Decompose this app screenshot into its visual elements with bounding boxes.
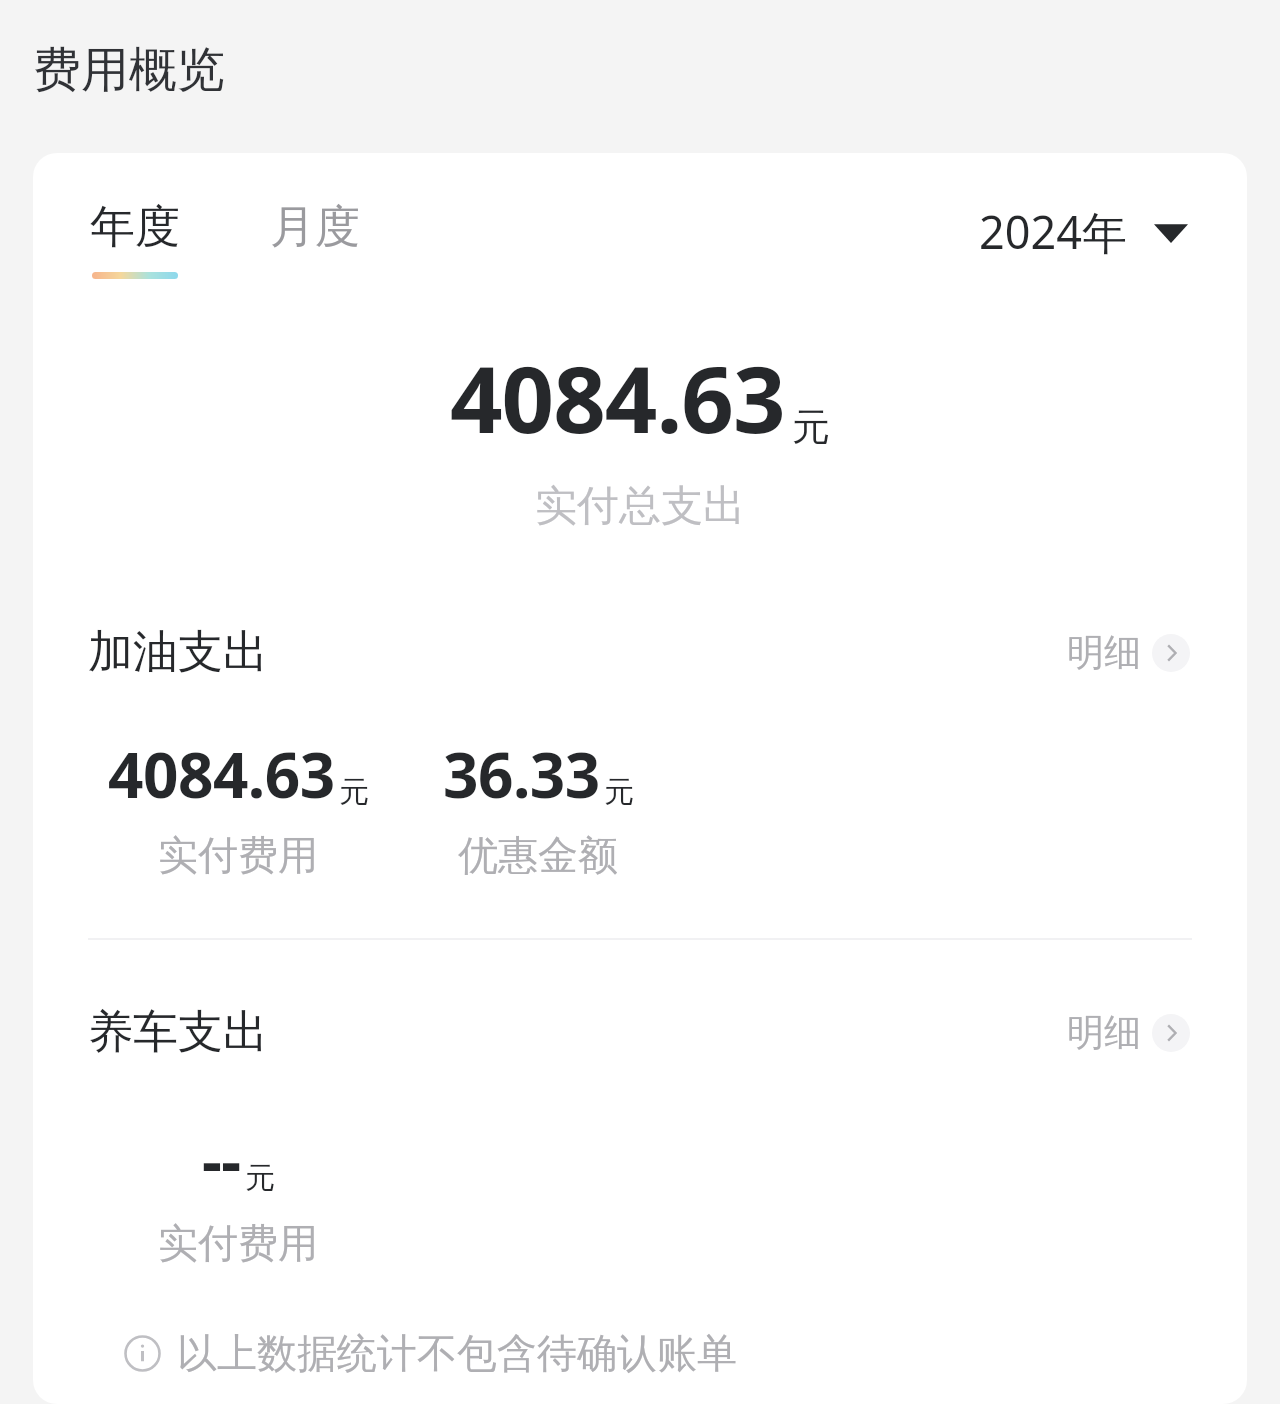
staticText: 元 <box>792 403 830 451</box>
button[interactable]: 明细 Details <box>1065 1003 1192 1062</box>
staticText: 元 <box>245 1159 275 1197</box>
staticText: 年度 <box>90 199 180 256</box>
staticText: 36.33 <box>443 732 600 816</box>
staticText: 以上数据统计不包含待确认账单 <box>177 1328 737 1378</box>
staticText: 费用概览 <box>33 40 225 100</box>
button[interactable]: 2024年 <box>975 199 1192 264</box>
staticText: 实付费用 <box>158 1218 318 1268</box>
staticText: 月度 <box>270 199 360 256</box>
staticText: -- <box>202 1118 241 1202</box>
staticText: 明细 <box>1067 629 1141 676</box>
staticText: 4084.63 <box>450 335 785 460</box>
staticText: 明细 <box>1067 1009 1141 1056</box>
staticText: 元 <box>604 773 634 811</box>
staticText: 加油支出 <box>88 624 268 681</box>
staticText: 养车支出 <box>88 1004 268 1061</box>
staticText: 实付费用 <box>158 830 318 880</box>
button[interactable]: 明细 Details <box>1065 623 1192 682</box>
staticText: 元 <box>339 773 369 811</box>
staticText: 实付总支出 <box>535 480 745 533</box>
staticText: 优惠金额 <box>458 830 618 880</box>
button[interactable]: 年度 <box>88 199 182 279</box>
staticText: 2024年 <box>979 201 1127 262</box>
staticText: 4084.63 <box>108 732 335 816</box>
button[interactable]: 月度 <box>268 199 362 256</box>
